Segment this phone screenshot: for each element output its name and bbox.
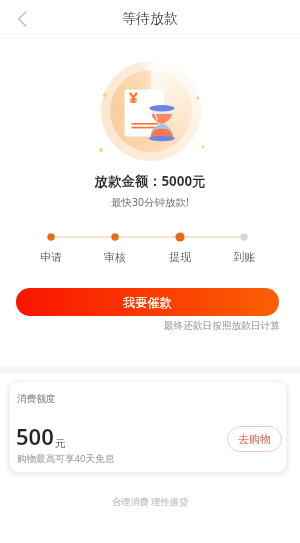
staticText: 审核 — [104, 250, 126, 264]
staticText: 等待放款 — [122, 10, 178, 28]
staticText: 我要催款 — [123, 295, 172, 310]
staticText: 申请 — [40, 250, 62, 264]
staticText: 500 — [16, 421, 54, 451]
staticText: 去购物 — [238, 432, 271, 446]
staticText: 元 — [55, 437, 66, 450]
button[interactable]: 到账 — [228, 250, 260, 264]
staticText: 提现 — [169, 250, 191, 264]
staticText: 放款金额：5000元 — [0, 172, 300, 190]
staticText: 最终还款日按照放款日计算 — [0, 320, 280, 332]
button[interactable]: 我要催款 — [16, 288, 279, 316]
button[interactable]: 去购物 — [227, 426, 282, 452]
button[interactable]: 申请 — [35, 250, 67, 264]
staticText: 到账 — [233, 250, 255, 264]
button[interactable]: Back — [0, 0, 38, 38]
staticText: 合理消费 理性借贷 — [0, 495, 300, 508]
staticText: 消费额度 — [17, 393, 56, 405]
staticText: 购物最高可享40天免息 — [17, 452, 115, 465]
button[interactable]: 提现 — [164, 250, 196, 264]
button[interactable]: 审核 — [99, 250, 131, 264]
staticText: 最快30分钟放款! — [0, 195, 300, 209]
